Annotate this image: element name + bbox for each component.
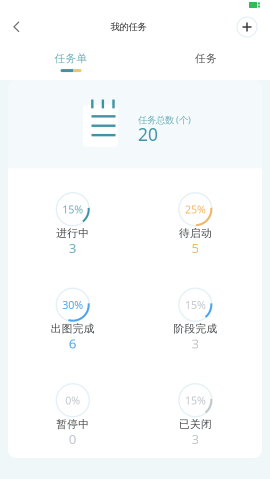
staticText: 30% bbox=[62, 298, 83, 312]
staticText: 5 bbox=[191, 239, 199, 257]
staticText: 暂停中 bbox=[56, 418, 89, 431]
staticText: 15% bbox=[62, 202, 83, 216]
button[interactable]: Back bbox=[0, 10, 33, 44]
staticText: 已关闭 bbox=[179, 418, 212, 431]
button[interactable]: 任务 bbox=[142, 44, 270, 80]
staticText: 3 bbox=[69, 239, 77, 257]
staticText: 15% bbox=[185, 393, 206, 407]
button[interactable]: 任务单 bbox=[0, 44, 142, 80]
staticText: 任务总数 (个) bbox=[138, 114, 191, 126]
staticText: 25% bbox=[185, 202, 206, 216]
staticText: 我的任务 bbox=[110, 21, 146, 33]
staticText: 20 bbox=[138, 123, 158, 146]
staticText: 0 bbox=[69, 430, 77, 448]
staticText: 任务 bbox=[195, 52, 217, 65]
staticText: 任务单 bbox=[54, 52, 87, 65]
staticText: 3 bbox=[191, 430, 199, 448]
staticText: 15% bbox=[185, 298, 206, 312]
staticText: 6 bbox=[69, 334, 77, 352]
staticText: 进行中 bbox=[56, 227, 89, 240]
staticText: 阶段完成 bbox=[173, 322, 217, 335]
staticText: 待启动 bbox=[179, 227, 212, 240]
staticText: 0% bbox=[65, 393, 80, 407]
button[interactable]: Add task bbox=[224, 10, 270, 44]
staticText: 3 bbox=[191, 334, 199, 352]
staticText: 出图完成 bbox=[51, 322, 95, 335]
